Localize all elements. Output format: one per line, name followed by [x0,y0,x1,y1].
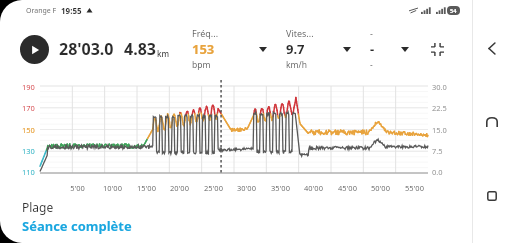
staticText: 30.0 [432,82,447,92]
staticText: 20'00 [170,183,189,193]
button[interactable]: Fréq... [192,27,254,71]
staticText: 54 [450,7,457,14]
button[interactable]: - [370,27,396,71]
button[interactable]: Retour [479,35,505,61]
staticText: 55'00 [405,183,424,193]
staticText: - [370,40,375,58]
staticText: 22.5 [432,103,447,113]
staticText: 170 [22,103,35,113]
staticText: Plage [22,199,54,215]
staticText: 130 [22,146,35,156]
staticText: 30'00 [237,183,256,193]
staticText: 7.5 [432,146,443,156]
staticText: Orange F [26,6,57,16]
staticText: 15.0 [432,125,447,135]
staticText: 5'00 [70,183,85,193]
staticText: - [370,59,373,71]
staticText: 19:55 [61,5,82,16]
button[interactable]: Lecture [20,35,49,64]
staticText: Vites... [286,27,314,39]
button[interactable]: Séance complète [22,217,132,235]
staticText: 25'00 [204,183,223,193]
staticText: 190 [22,82,35,92]
staticText: 4.83 [124,38,156,60]
staticText: km [157,48,170,59]
button[interactable]: Applications récentes [479,183,505,209]
staticText: 40'00 [304,183,323,193]
staticText: 110 [22,167,35,177]
staticText: 0.0 [432,167,443,177]
staticText: 15'00 [137,183,156,193]
staticText: 50'00 [371,183,390,193]
staticText: 153 [192,40,215,58]
staticText: 45'00 [338,183,357,193]
button[interactable]: Réduire [426,38,448,60]
staticText: bpm [192,59,211,71]
button[interactable]: Choisir la métrique [338,40,356,58]
staticText: 35'00 [271,183,290,193]
staticText: - [370,27,373,39]
staticText: 9.7 [286,40,305,58]
button[interactable]: Vites... [286,27,338,71]
button[interactable]: Choisir la métrique [254,40,272,58]
staticText: 10'00 [103,183,122,193]
staticText: 28'03.0 [59,38,114,60]
staticText: km/h [286,59,307,71]
staticText: 150 [22,125,35,135]
button[interactable]: Accueil [479,109,505,135]
staticText: Fréq... [192,27,219,39]
button[interactable]: Choisir la métrique [396,40,414,58]
